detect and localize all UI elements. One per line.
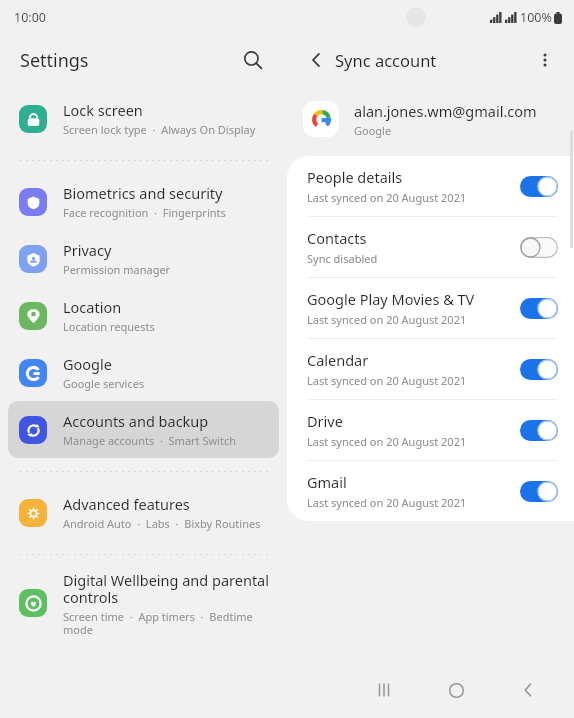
staticText: Google: [63, 354, 112, 374]
button[interactable]: Sync on: [520, 481, 558, 502]
staticText: 10:00: [14, 9, 46, 26]
button[interactable]: Sync on: [520, 420, 558, 441]
staticText: Settings: [20, 48, 89, 73]
staticText: Permission manager: [63, 262, 171, 277]
staticText: Sync account: [335, 49, 437, 71]
button[interactable]: Gmail: [287, 461, 574, 521]
button[interactable]: Lock screen: [8, 90, 279, 147]
button[interactable]: Home: [420, 662, 492, 718]
staticText: Google: [354, 123, 392, 138]
button[interactable]: Sync off: [520, 237, 558, 258]
button[interactable]: Advanced features: [8, 484, 279, 541]
staticText: Contacts: [307, 228, 367, 248]
staticText: Last synced on 20 August 2021: [307, 373, 467, 388]
staticText: Android Auto · Labs · Bixby Routines: [63, 516, 261, 531]
staticText: Location requests: [63, 319, 155, 334]
staticText: Gmail: [307, 472, 347, 492]
staticText: Last synced on 20 August 2021: [307, 190, 467, 205]
staticText: Lock screen: [63, 100, 143, 120]
button[interactable]: Biometrics and security: [8, 173, 279, 230]
button[interactable]: Back: [299, 43, 333, 77]
staticText: alan.jones.wm@gmail.com: [354, 101, 537, 121]
staticText: Last synced on 20 August 2021: [307, 434, 467, 449]
staticText: Accounts and backup: [63, 411, 209, 431]
button[interactable]: Sync on: [520, 176, 558, 197]
button[interactable]: alan.jones.wm@gmail.com: [287, 86, 574, 152]
button[interactable]: Drive: [287, 400, 574, 460]
staticText: Google Play Movies & TV: [307, 289, 475, 309]
button[interactable]: Google: [8, 344, 279, 401]
button[interactable]: Privacy: [8, 230, 279, 287]
staticText: Drive: [307, 411, 343, 431]
staticText: Google services: [63, 376, 145, 391]
staticText: Advanced features: [63, 494, 190, 514]
button[interactable]: Back: [492, 662, 564, 718]
button[interactable]: Contacts: [287, 217, 574, 277]
staticText: Location: [63, 297, 122, 317]
button[interactable]: Calendar: [287, 339, 574, 399]
staticText: People details: [307, 167, 403, 187]
staticText: Digital Wellbeing and parental controls: [63, 570, 269, 607]
staticText: Calendar: [307, 350, 369, 370]
button[interactable]: Accounts and backup: [8, 401, 279, 458]
staticText: 100%: [520, 9, 552, 26]
staticText: Manage accounts · Smart Switch: [63, 433, 236, 448]
button[interactable]: Sync on: [520, 359, 558, 380]
button[interactable]: Sync on: [520, 298, 558, 319]
staticText: Last synced on 20 August 2021: [307, 495, 467, 510]
button[interactable]: More options: [528, 43, 562, 77]
button[interactable]: Recents: [348, 662, 420, 718]
staticText: Biometrics and security: [63, 183, 223, 203]
staticText: Screen lock type · Always On Display: [63, 122, 256, 137]
button[interactable]: Google Play Movies & TV: [287, 278, 574, 338]
button[interactable]: Digital Wellbeing and parental controls: [8, 567, 279, 639]
staticText: Screen time · App timers · Bedtime mode: [63, 609, 269, 637]
button[interactable]: People details: [287, 156, 574, 216]
button[interactable]: Location: [8, 287, 279, 344]
button[interactable]: Search: [235, 42, 271, 78]
staticText: Face recognition · Fingerprints: [63, 205, 226, 220]
staticText: Last synced on 20 August 2021: [307, 312, 467, 327]
staticText: Privacy: [63, 240, 112, 260]
staticText: Sync disabled: [307, 251, 378, 266]
